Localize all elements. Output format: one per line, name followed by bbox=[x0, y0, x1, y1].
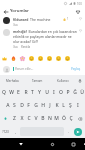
button[interactable]: Emoji reaction bbox=[0, 53, 9, 63]
staticText: S bbox=[13, 102, 16, 109]
button[interactable]: Kullanıcı bbox=[50, 75, 75, 86]
button[interactable]: E bbox=[15, 86, 22, 99]
button[interactable]: W bbox=[8, 86, 15, 99]
staticText: , bbox=[15, 129, 16, 134]
button[interactable]: D bbox=[18, 99, 25, 112]
button[interactable]: Switch keyboard bbox=[84, 138, 85, 150]
button[interactable]: Tamam bbox=[25, 75, 50, 86]
staticText: . bbox=[68, 129, 69, 134]
button[interactable]: V bbox=[32, 112, 39, 125]
button[interactable]: Hide keyboard bbox=[0, 138, 42, 150]
button[interactable]: A bbox=[4, 99, 11, 112]
staticText: Ö bbox=[62, 115, 66, 122]
button[interactable]: Share bbox=[74, 8, 81, 15]
button[interactable]: X bbox=[18, 112, 25, 125]
button[interactable]: Ş bbox=[67, 99, 74, 112]
staticText: Yorumlar bbox=[10, 8, 29, 14]
button[interactable]: Ğ bbox=[71, 86, 78, 99]
staticText: U bbox=[45, 89, 49, 96]
staticText: I bbox=[77, 102, 79, 109]
button[interactable]: R bbox=[22, 86, 29, 99]
button[interactable]: K bbox=[53, 99, 60, 112]
button[interactable]: fildsward The machine bbox=[0, 17, 85, 27]
button[interactable]: I bbox=[50, 86, 57, 99]
staticText: J bbox=[49, 102, 51, 109]
staticText: R bbox=[24, 89, 28, 96]
button[interactable]: Q bbox=[0, 86, 8, 99]
staticText: C bbox=[27, 115, 31, 122]
button[interactable]: Merhaba bbox=[0, 75, 25, 86]
button[interactable]: I bbox=[74, 99, 81, 112]
button[interactable]: ?123 bbox=[0, 125, 11, 138]
button[interactable]: Backspace bbox=[74, 112, 85, 125]
button[interactable]: O bbox=[57, 86, 64, 99]
button[interactable]: G bbox=[32, 99, 39, 112]
button[interactable]: H bbox=[39, 99, 46, 112]
button[interactable]: F bbox=[25, 99, 32, 112]
staticText: 3sa bbox=[13, 23, 18, 27]
staticText: V bbox=[34, 115, 38, 122]
button[interactable]: Paylaş bbox=[70, 67, 82, 71]
staticText: L bbox=[62, 102, 65, 109]
button[interactable]: P bbox=[64, 86, 71, 99]
staticText: G bbox=[34, 102, 38, 109]
button[interactable]: mehdjkf Bunalardan en çok kazandıran etk… bbox=[0, 29, 85, 49]
staticText: A bbox=[6, 102, 10, 109]
button[interactable]: , bbox=[11, 125, 19, 138]
button[interactable]: Back bbox=[2, 8, 9, 15]
button[interactable]: J bbox=[46, 99, 53, 112]
staticText: Ğ bbox=[73, 89, 77, 96]
staticText: Q bbox=[2, 89, 6, 96]
staticText: Z bbox=[13, 115, 16, 122]
staticText: Paylaş bbox=[71, 67, 81, 71]
button[interactable]: Z bbox=[11, 112, 18, 125]
button[interactable]: Send bbox=[74, 128, 82, 136]
button[interactable]: Emoji reaction bbox=[9, 53, 18, 63]
staticText: 3sa bbox=[13, 45, 18, 49]
staticText: mehdjkf Bunalardan en çok kazandıran etk… bbox=[13, 29, 77, 44]
staticText: E bbox=[17, 89, 20, 96]
button[interactable]: M bbox=[53, 112, 60, 125]
staticText: Ş bbox=[69, 102, 72, 109]
staticText: fildsward The machine bbox=[13, 17, 51, 22]
staticText: B bbox=[41, 115, 45, 122]
staticText: K bbox=[55, 102, 59, 109]
button[interactable]: Shift bbox=[0, 112, 11, 125]
button[interactable]: . bbox=[65, 125, 71, 138]
button[interactable]: Emoji reaction bbox=[63, 53, 72, 63]
staticText: N bbox=[48, 115, 52, 122]
staticText: X bbox=[20, 115, 24, 122]
button[interactable]: Y bbox=[36, 86, 43, 99]
button[interactable]: Ç bbox=[67, 112, 74, 125]
staticText: F bbox=[27, 102, 30, 109]
button[interactable]: Ü bbox=[78, 86, 85, 99]
staticText: Merhaba bbox=[6, 79, 19, 83]
staticText: T bbox=[31, 89, 34, 96]
button[interactable]: Recent apps bbox=[63, 138, 84, 150]
button[interactable]: U bbox=[43, 86, 50, 99]
staticText: 100 bbox=[77, 2, 82, 6]
button[interactable]: S bbox=[11, 99, 18, 112]
button[interactable]: N bbox=[46, 112, 53, 125]
button[interactable]: T bbox=[29, 86, 36, 99]
button[interactable]: B bbox=[39, 112, 46, 125]
button[interactable]: Emoji reaction bbox=[36, 53, 45, 63]
button[interactable]: Emoji reaction bbox=[18, 53, 27, 63]
button[interactable]: Emoji reaction bbox=[45, 53, 54, 63]
staticText: W bbox=[9, 89, 14, 96]
staticText: M bbox=[54, 115, 59, 122]
staticText: ! bbox=[67, 17, 68, 21]
staticText: P bbox=[66, 89, 70, 96]
staticText: Tamam bbox=[32, 79, 43, 83]
button[interactable]: C bbox=[25, 112, 32, 125]
staticText: Yanıtla bbox=[21, 45, 31, 49]
button[interactable]: L bbox=[60, 99, 67, 112]
button[interactable]: Emoji reaction bbox=[27, 53, 36, 63]
button[interactable]: Ö bbox=[60, 112, 67, 125]
button[interactable]: Emoji reaction bbox=[54, 53, 63, 63]
staticText: D bbox=[20, 102, 24, 109]
button[interactable]: Home bbox=[42, 138, 63, 150]
staticText: O bbox=[59, 89, 63, 96]
button[interactable]: Voice input bbox=[75, 75, 85, 86]
